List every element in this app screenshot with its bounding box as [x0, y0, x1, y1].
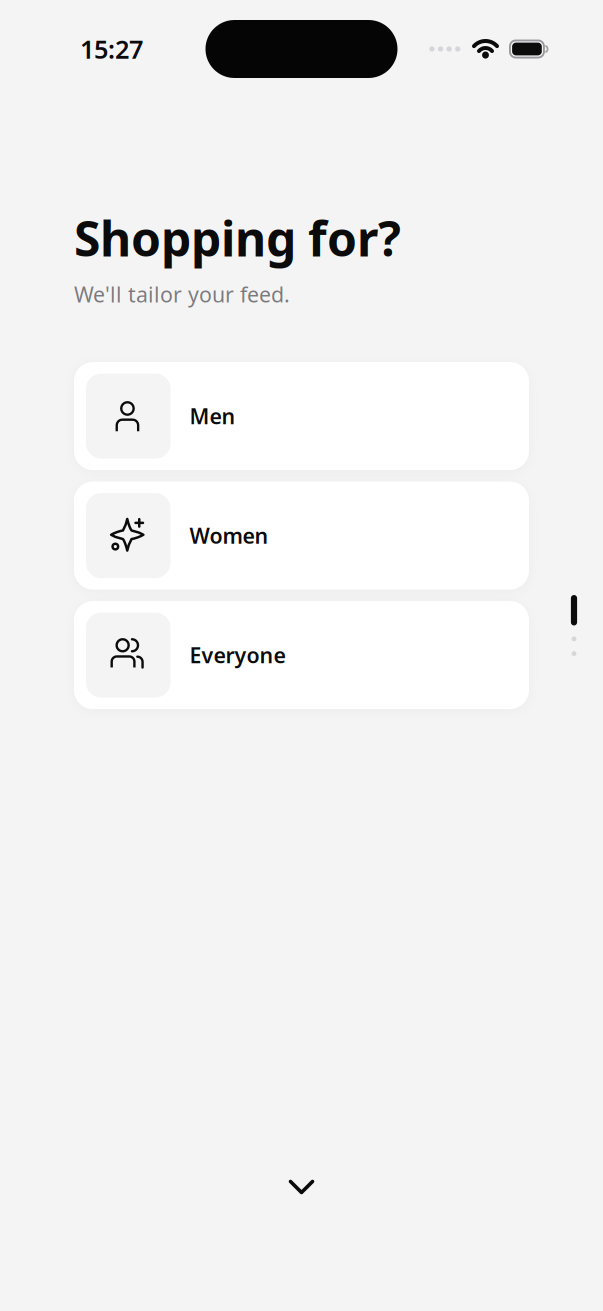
staticText: 15:27: [80, 32, 143, 66]
button[interactable]: Everyone: [74, 601, 529, 709]
staticText: Women: [189, 521, 268, 550]
staticText: Everyone: [189, 641, 285, 669]
button[interactable]: Men: [74, 362, 529, 470]
button[interactable]: Women: [74, 482, 529, 590]
staticText: Men: [189, 402, 235, 430]
staticText: Shopping for?: [74, 206, 401, 270]
button[interactable]: Scroll down: [269, 1163, 333, 1211]
staticText: We'll tailor your feed.: [74, 280, 290, 308]
